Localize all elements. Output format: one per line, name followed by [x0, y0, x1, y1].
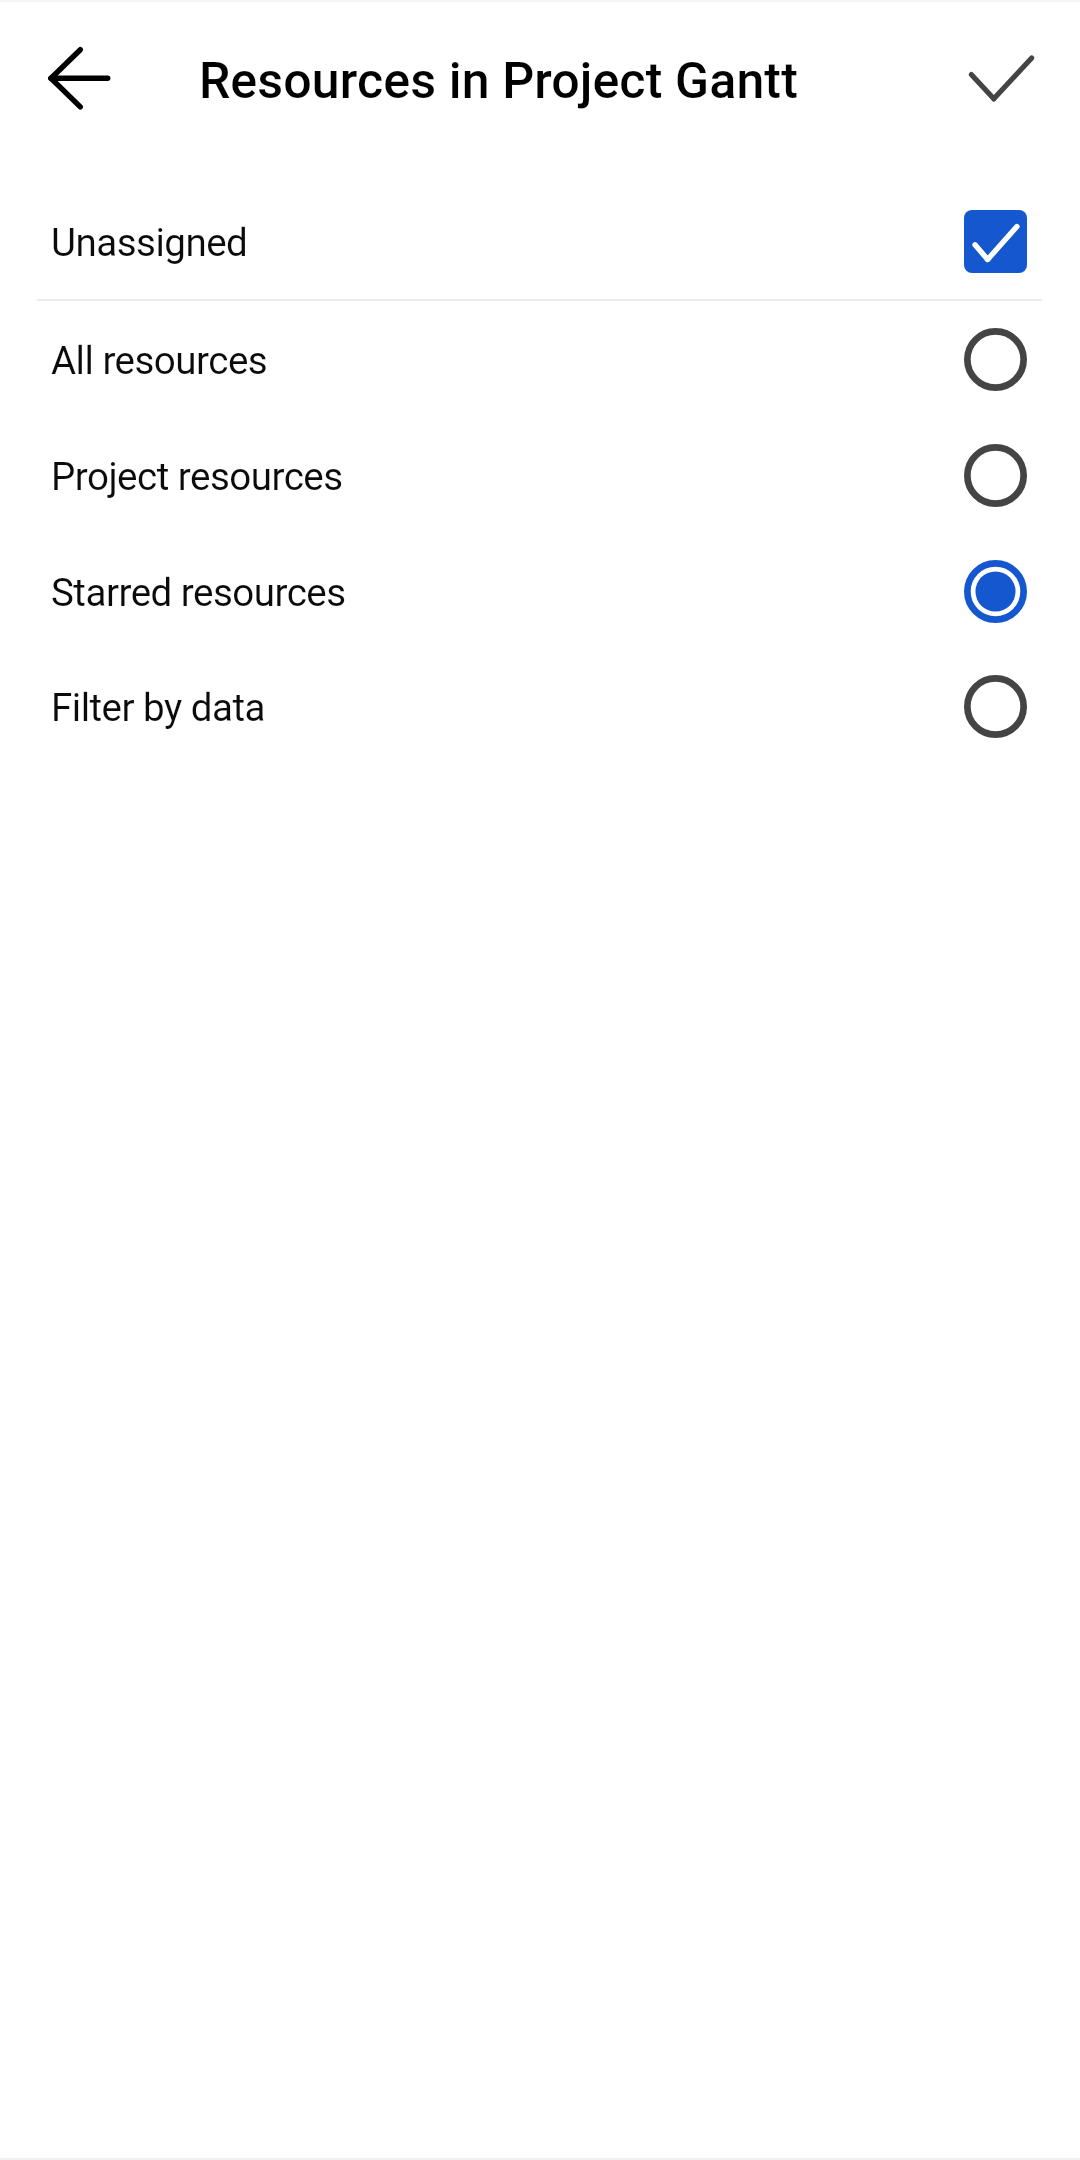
button[interactable]: Unassigned [0, 180, 1080, 300]
staticText: Resources in Project Gantt [199, 52, 798, 111]
staticText: Unassigned [51, 220, 248, 265]
button[interactable]: Starred resources [0, 532, 1080, 648]
staticText: Filter by data [51, 685, 265, 730]
button[interactable]: All resources [0, 300, 1080, 416]
staticText: Starred resources [51, 570, 346, 615]
button[interactable]: Done [939, 15, 1065, 141]
button[interactable]: Navigate up [16, 15, 142, 141]
button[interactable]: Project resources [0, 416, 1080, 532]
staticText: All resources [51, 338, 268, 383]
staticText: Project resources [51, 454, 343, 499]
button[interactable]: Filter by data [0, 648, 1080, 764]
